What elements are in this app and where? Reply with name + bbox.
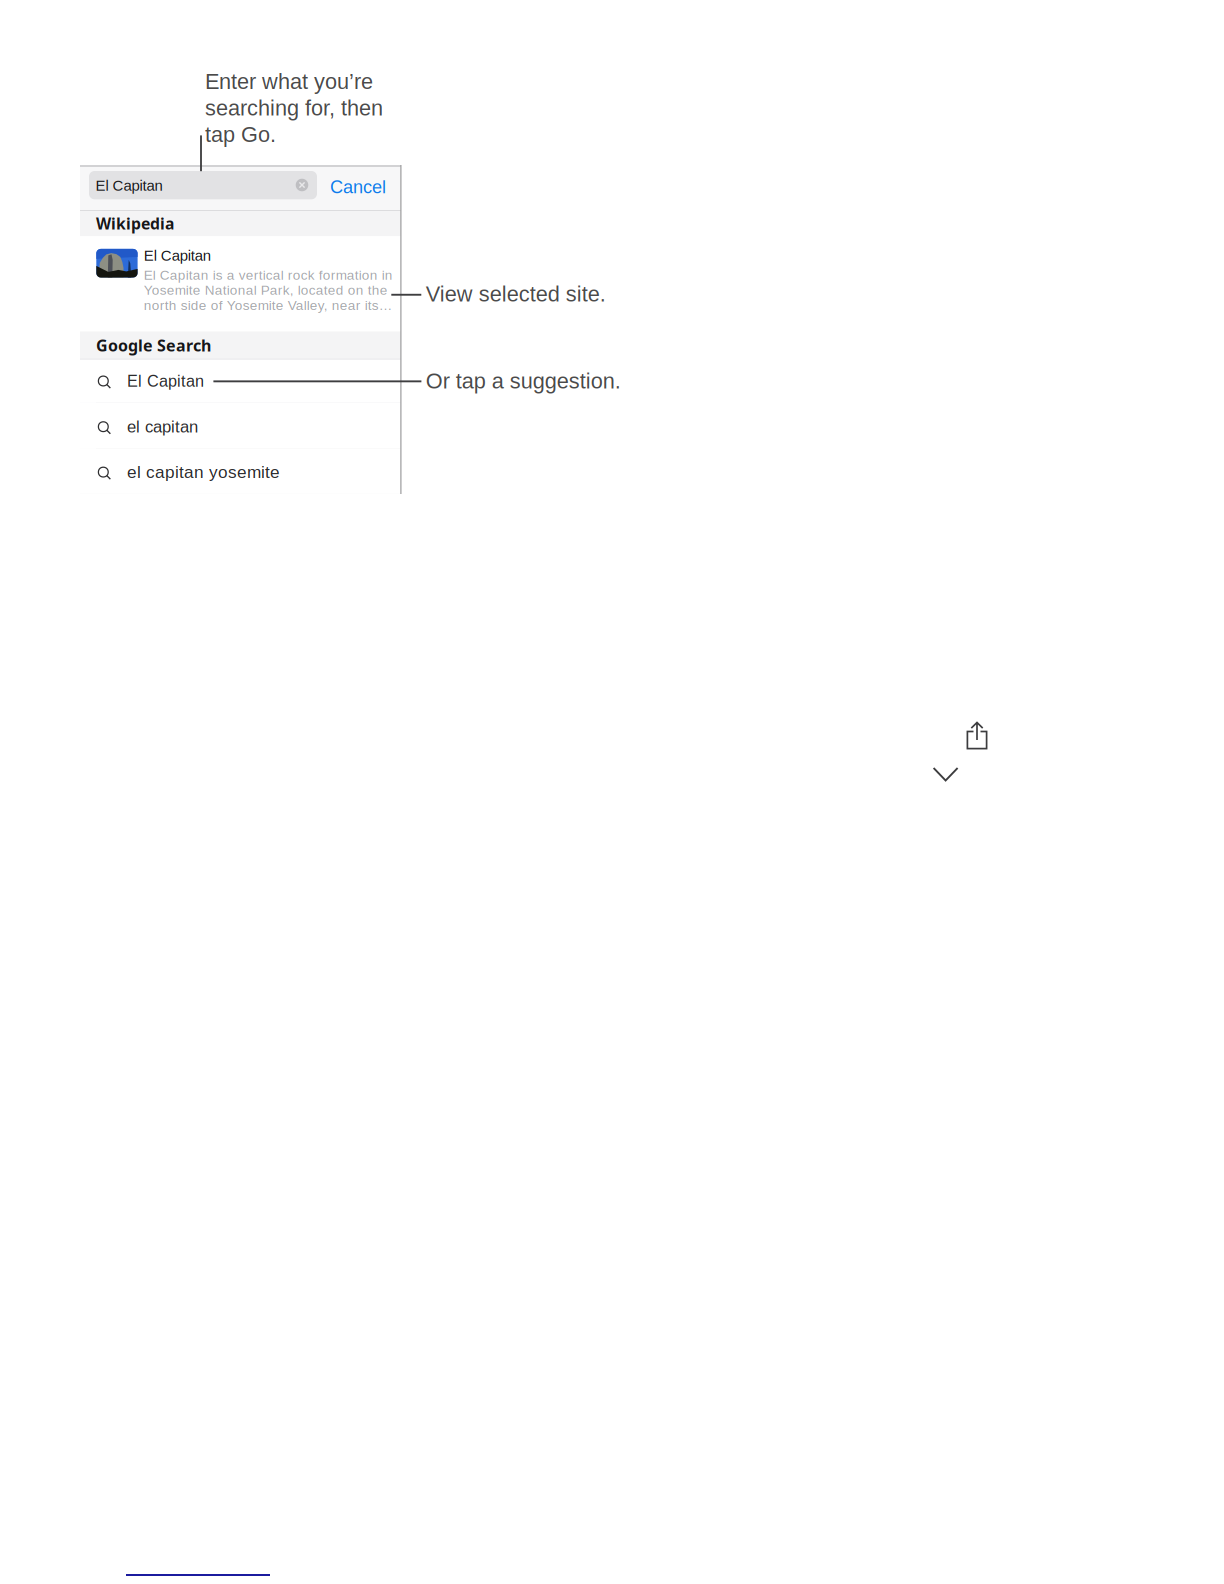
staticText: El Capitan bbox=[95, 177, 162, 194]
button[interactable]: el capitan bbox=[80, 403, 401, 448]
staticText: El Capitan is a vertical rock formation … bbox=[144, 267, 393, 282]
staticText: el capitan bbox=[127, 417, 198, 436]
staticText: Cancel bbox=[330, 177, 386, 197]
staticText: north side of Yosemite Valley, near its… bbox=[144, 298, 393, 313]
staticText: tap Go. bbox=[205, 122, 276, 147]
staticText: Wikipedia bbox=[96, 213, 174, 234]
button[interactable]: El Capitan bbox=[80, 165, 327, 209]
button[interactable]: El Capitan bbox=[80, 236, 401, 331]
button[interactable]: el capitan yosemite bbox=[80, 448, 401, 494]
staticText: View selected site. bbox=[426, 282, 606, 306]
staticText: El Capitan bbox=[127, 372, 204, 390]
staticText: el capitan yosemite bbox=[127, 462, 280, 482]
staticText: searching for, then bbox=[205, 96, 383, 120]
button[interactable]: Share bbox=[957, 715, 997, 755]
staticText: El Capitan bbox=[144, 247, 211, 264]
staticText: Yosemite National Park, located on the bbox=[144, 282, 388, 298]
staticText: Enter what you’re bbox=[205, 69, 373, 94]
button[interactable]: El Capitan bbox=[80, 360, 401, 403]
button[interactable]: Cancel bbox=[327, 165, 401, 209]
staticText: Google Search bbox=[96, 334, 211, 356]
staticText: Or tap a suggestion. bbox=[426, 369, 621, 393]
button[interactable]: Show more bbox=[926, 754, 966, 794]
